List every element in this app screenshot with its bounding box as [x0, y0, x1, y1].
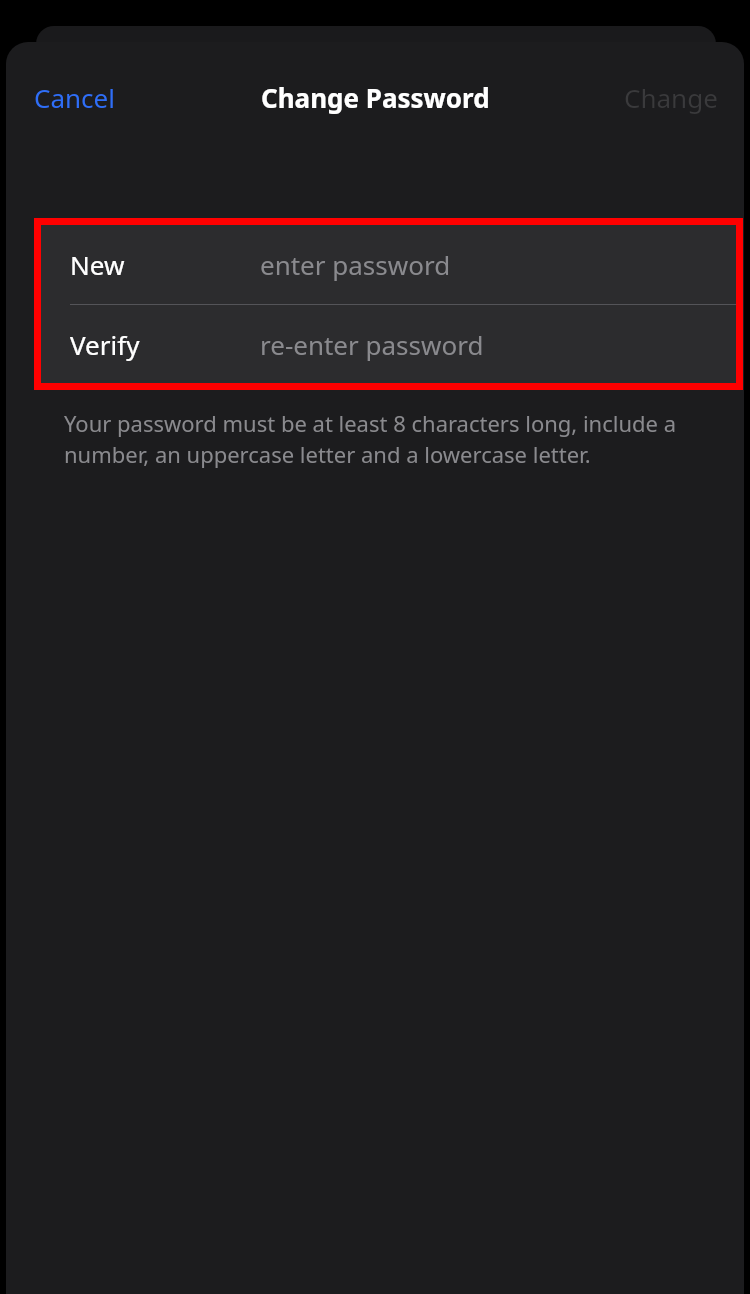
staticText: Cancel — [34, 80, 115, 115]
staticText: Verify — [70, 327, 140, 362]
staticText: Your password must be at least 8 charact… — [64, 408, 678, 470]
button[interactable]: Cancel — [16, 70, 133, 125]
staticText: Change — [624, 80, 718, 115]
button[interactable]: New — [41, 225, 736, 304]
staticText: re-enter password — [260, 327, 484, 362]
button[interactable]: Verify — [41, 305, 736, 383]
staticText: New — [70, 247, 125, 282]
button[interactable]: Change — [606, 70, 736, 125]
staticText: enter password — [260, 247, 451, 282]
staticText: Change Password — [261, 80, 490, 115]
